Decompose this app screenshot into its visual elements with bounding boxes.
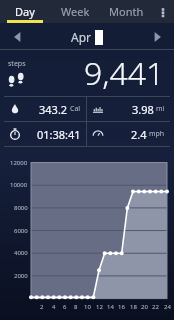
other: Speed — [92, 128, 104, 140]
staticText: 12000 — [10, 159, 28, 167]
other: Calories — [9, 103, 21, 115]
staticText: 2.4 — [131, 127, 147, 142]
button[interactable]: Calories — [4, 97, 86, 121]
staticText: Apr — [71, 29, 92, 45]
staticText: 14 — [107, 303, 114, 311]
staticText: 6000 — [14, 227, 28, 235]
staticText: 16 — [118, 303, 125, 311]
staticText: 3.98 — [132, 102, 154, 117]
other: Distance — [92, 103, 104, 115]
staticText: 10 — [84, 303, 91, 311]
staticText: 8000 — [14, 204, 28, 212]
button[interactable]: More options — [152, 0, 174, 23]
button[interactable]: Month — [101, 0, 152, 23]
staticText: steps — [8, 59, 26, 69]
staticText: 10000 — [10, 181, 28, 189]
button[interactable]: Speed — [87, 122, 170, 146]
staticText: Month — [109, 4, 144, 19]
staticText: Cal — [70, 104, 81, 114]
staticText: 8 — [74, 303, 78, 311]
button[interactable]: Distance — [87, 97, 170, 121]
staticText: 01:38:41 — [37, 127, 81, 142]
staticText: Week — [61, 4, 90, 19]
staticText: 9,441 — [84, 51, 165, 95]
button[interactable]: Duration — [4, 122, 86, 146]
button[interactable]: Week — [50, 0, 101, 23]
staticText: 6 — [63, 303, 67, 311]
staticText: 18 — [130, 303, 137, 311]
button[interactable]: Day — [0, 0, 50, 23]
staticText: 2 — [40, 303, 44, 311]
staticText: mi — [156, 104, 165, 114]
staticText: 22 — [152, 303, 159, 311]
staticText: 4 — [52, 303, 56, 311]
staticText: 2000 — [14, 272, 28, 280]
staticText: 20 — [141, 303, 148, 311]
button[interactable]: Next month — [140, 23, 174, 50]
staticText: 4000 — [14, 249, 28, 257]
staticText: 12 — [96, 303, 103, 311]
staticText: mph — [149, 129, 165, 139]
staticText: 24 — [164, 303, 171, 311]
other: Duration — [9, 128, 21, 140]
staticText: 343.2 — [39, 102, 68, 117]
staticText: Day — [15, 4, 35, 19]
button[interactable]: Previous month — [0, 23, 34, 50]
